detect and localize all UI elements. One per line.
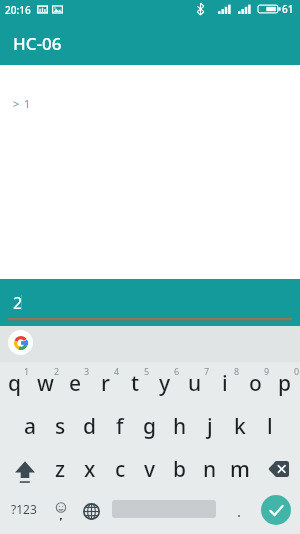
- staticText: t: [131, 369, 140, 398]
- button[interactable]: s: [45, 405, 75, 448]
- staticText: 4: [114, 365, 120, 377]
- staticText: z: [55, 455, 66, 484]
- button[interactable]: z: [45, 448, 75, 491]
- button[interactable]: a: [15, 405, 45, 448]
- staticText: q: [8, 369, 22, 398]
- staticText: n: [203, 455, 217, 484]
- staticText: b: [173, 455, 187, 484]
- staticText: 1: [24, 365, 30, 377]
- button[interactable]: v: [135, 448, 165, 491]
- staticText: 20:16: [5, 3, 31, 17]
- button[interactable]: m: [225, 448, 255, 491]
- staticText: g: [143, 412, 157, 441]
- button[interactable]: l: [255, 405, 285, 448]
- staticText: 8: [234, 365, 240, 377]
- button[interactable]: q: [0, 362, 30, 405]
- button[interactable]: j: [195, 405, 225, 448]
- staticText: d: [83, 412, 97, 441]
- staticText: 61: [282, 2, 294, 16]
- button[interactable]: o: [240, 362, 270, 405]
- staticText: a: [24, 412, 37, 441]
- button[interactable]: f: [105, 405, 135, 448]
- staticText: 2: [13, 292, 23, 314]
- button[interactable]: u: [180, 362, 210, 405]
- staticText: p: [278, 369, 292, 398]
- button[interactable]: x: [75, 448, 105, 491]
- staticText: s: [55, 412, 66, 441]
- button[interactable]: e: [60, 362, 90, 405]
- button[interactable]: b: [165, 448, 195, 491]
- button[interactable]: r: [90, 362, 120, 405]
- staticText: ?123: [11, 501, 37, 517]
- button[interactable]: p: [270, 362, 300, 405]
- staticText: j: [207, 412, 213, 441]
- staticText: v: [144, 455, 156, 484]
- staticText: 2: [54, 365, 60, 377]
- staticText: r: [101, 369, 110, 398]
- staticText: k: [234, 412, 246, 441]
- staticText: HC-06: [13, 32, 62, 55]
- button[interactable]: Send: [261, 495, 291, 525]
- button[interactable]: ?123: [4, 486, 44, 532]
- staticText: x: [84, 455, 96, 484]
- button[interactable]: t: [120, 362, 150, 405]
- button[interactable]: k: [225, 405, 255, 448]
- staticText: e: [69, 369, 82, 398]
- button[interactable]: c: [105, 448, 135, 491]
- button[interactable]: h: [165, 405, 195, 448]
- staticText: .: [237, 501, 242, 521]
- staticText: f: [116, 412, 124, 441]
- button[interactable]: y: [150, 362, 180, 405]
- staticText: u: [188, 369, 202, 398]
- staticText: 0: [294, 365, 300, 377]
- staticText: 7: [204, 365, 210, 377]
- staticText: c: [115, 455, 126, 484]
- button[interactable]: Backspace: [255, 448, 300, 491]
- staticText: 5: [144, 365, 150, 377]
- button[interactable]: Emoji: [46, 488, 76, 534]
- staticText: i: [222, 369, 228, 398]
- staticText: o: [249, 369, 262, 398]
- button[interactable]: .: [224, 488, 254, 534]
- button[interactable]: g: [135, 405, 165, 448]
- staticText: m: [230, 455, 250, 484]
- button[interactable]: Shift: [0, 448, 45, 491]
- staticText: l: [267, 412, 273, 441]
- button[interactable]: i: [210, 362, 240, 405]
- staticText: w: [37, 369, 54, 398]
- button[interactable]: Google search: [8, 330, 33, 355]
- staticText: 9: [264, 365, 270, 377]
- staticText: h: [173, 412, 187, 441]
- staticText: y: [159, 369, 171, 398]
- button[interactable]: Switch language: [76, 488, 106, 534]
- staticText: 6: [174, 365, 180, 377]
- button[interactable]: w: [30, 362, 60, 405]
- button[interactable]: d: [75, 405, 105, 448]
- button[interactable]: n: [195, 448, 225, 491]
- staticText: 3: [84, 365, 90, 377]
- staticText: > 1: [13, 96, 32, 111]
